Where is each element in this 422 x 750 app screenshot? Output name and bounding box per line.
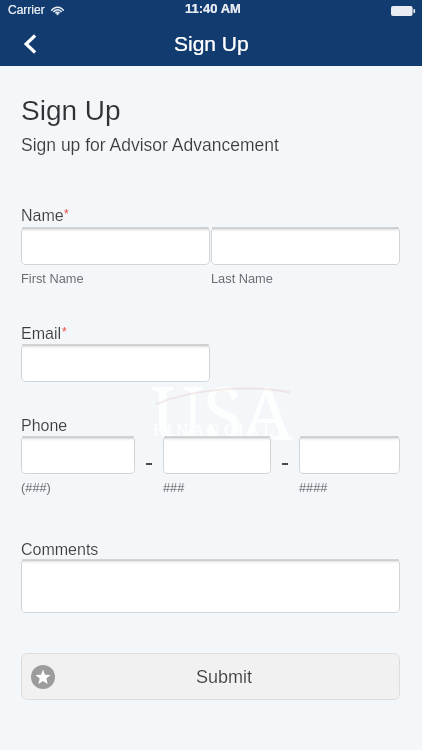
staticText: Carrier bbox=[8, 3, 45, 16]
button[interactable] bbox=[163, 436, 271, 474]
staticText: Last Name bbox=[211, 271, 273, 285]
staticText: Sign up for Advisor Advancement bbox=[21, 135, 279, 155]
staticText: Email bbox=[21, 325, 62, 343]
button[interactable] bbox=[299, 436, 400, 474]
button[interactable]: Submit bbox=[21, 653, 400, 700]
staticText: ### bbox=[163, 480, 185, 494]
staticText: Name bbox=[21, 207, 64, 225]
staticText: Sign Up bbox=[174, 32, 249, 55]
staticText: Comments bbox=[21, 541, 99, 559]
staticText: #### bbox=[299, 480, 328, 494]
staticText: (###) bbox=[21, 480, 51, 494]
staticText: 11:40 AM bbox=[185, 1, 241, 16]
staticText: Phone bbox=[21, 417, 68, 435]
staticText: * bbox=[64, 207, 69, 220]
staticText: Sign Up bbox=[21, 95, 121, 126]
staticText: Submit bbox=[196, 667, 253, 687]
button[interactable] bbox=[21, 436, 135, 474]
staticText: USA bbox=[151, 362, 294, 461]
button[interactable]: Back bbox=[0, 22, 50, 66]
staticText: FINANCIAL bbox=[153, 419, 277, 441]
staticText: * bbox=[62, 325, 67, 338]
button[interactable] bbox=[21, 227, 210, 265]
button[interactable] bbox=[21, 344, 210, 382]
button[interactable] bbox=[21, 559, 400, 613]
button[interactable] bbox=[211, 227, 400, 265]
staticText: First Name bbox=[21, 271, 84, 285]
